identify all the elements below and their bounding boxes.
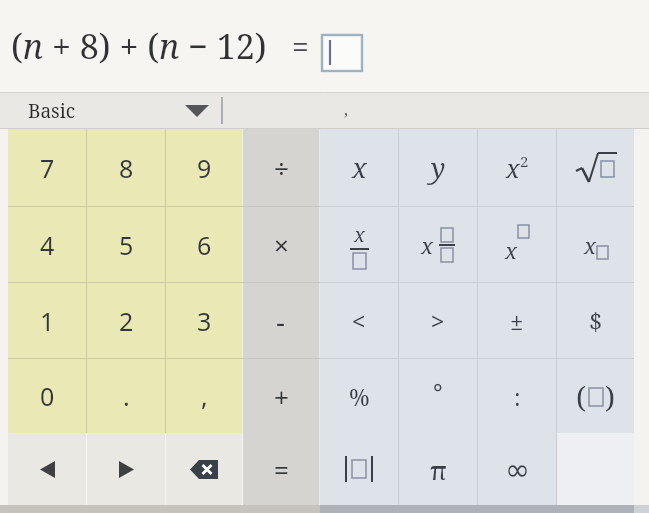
staticText: ) (605, 377, 616, 416)
staticText: 7 (40, 151, 55, 185)
button[interactable]: 6 (166, 207, 242, 282)
staticText: , (344, 98, 349, 120)
button[interactable]: , (166, 359, 242, 433)
button[interactable]: : (478, 359, 556, 433)
button[interactable]: > (399, 283, 477, 358)
staticText: ÷ (274, 150, 289, 185)
staticText: π (430, 452, 447, 487)
button[interactable]: . (87, 359, 165, 433)
staticText: > (431, 305, 445, 336)
button[interactable]: = (243, 433, 319, 505)
staticText: < (352, 305, 366, 336)
staticText: 4 (40, 228, 55, 262)
button[interactable]: 0 (8, 359, 86, 433)
staticText: x (584, 230, 597, 260)
staticText: 5 (119, 228, 134, 262)
button[interactable]: ° (399, 359, 477, 433)
staticText: 8 (119, 151, 134, 185)
button[interactable] (166, 433, 242, 505)
staticText: (n + 8) + (n − 12) (11, 23, 267, 69)
button[interactable]: ∞ (478, 433, 556, 505)
button[interactable]: 7 (8, 129, 86, 206)
button[interactable]: x (320, 129, 398, 206)
staticText: × (274, 227, 289, 262)
button[interactable]: - (243, 283, 319, 358)
button[interactable]: 5 (87, 207, 165, 282)
staticText: y (431, 149, 446, 186)
button[interactable]: 8 (87, 129, 165, 206)
button[interactable]: x (478, 207, 556, 282)
staticText: 0 (40, 379, 55, 413)
button[interactable]: x (320, 207, 398, 282)
staticText: % (349, 381, 370, 412)
staticText: x (505, 235, 518, 265)
button[interactable] (8, 433, 86, 505)
staticText: $ (589, 304, 603, 337)
button[interactable] (320, 433, 398, 505)
button[interactable]: ( (557, 359, 634, 433)
staticText: 3 (197, 304, 212, 338)
staticText: 2 (119, 304, 134, 338)
staticText: ( (576, 377, 587, 416)
staticText: ∞ (505, 452, 530, 487)
staticText: : (514, 381, 521, 412)
staticText: 6 (197, 228, 212, 262)
button[interactable]: 3 (166, 283, 242, 358)
button[interactable]: x (478, 129, 556, 206)
button[interactable]: ± (478, 283, 556, 358)
button[interactable]: $ (557, 283, 634, 358)
staticText: Basic (28, 98, 76, 124)
button[interactable] (557, 129, 634, 206)
button[interactable]: × (243, 207, 319, 282)
button[interactable]: ÷ (243, 129, 319, 206)
button[interactable]: 4 (8, 207, 86, 282)
staticText: , (201, 379, 208, 413)
button[interactable]: 2 (87, 283, 165, 358)
button[interactable]: π (399, 433, 477, 505)
button[interactable]: 9 (166, 129, 242, 206)
staticText: = (292, 26, 309, 67)
button[interactable]: 1 (8, 283, 86, 358)
button[interactable] (0, 92, 222, 129)
staticText: ° (433, 375, 443, 408)
staticText: 2 (520, 151, 529, 171)
staticText: - (276, 302, 286, 340)
staticText: 1 (40, 304, 55, 338)
staticText: . (123, 379, 130, 413)
staticText: x (421, 230, 434, 260)
staticText: x (352, 149, 367, 186)
button[interactable]: y (399, 129, 477, 206)
button[interactable] (87, 433, 165, 505)
button[interactable]: x (399, 207, 477, 282)
button[interactable]: < (320, 283, 398, 358)
button[interactable]: + (243, 359, 319, 433)
staticText: ± (510, 304, 524, 337)
button[interactable]: x (557, 207, 634, 282)
staticText: x (354, 221, 365, 248)
staticText: + (274, 379, 289, 414)
staticText: = (274, 452, 289, 487)
staticText: x (506, 151, 520, 185)
button[interactable]: % (320, 359, 398, 433)
staticText: 9 (197, 151, 212, 185)
